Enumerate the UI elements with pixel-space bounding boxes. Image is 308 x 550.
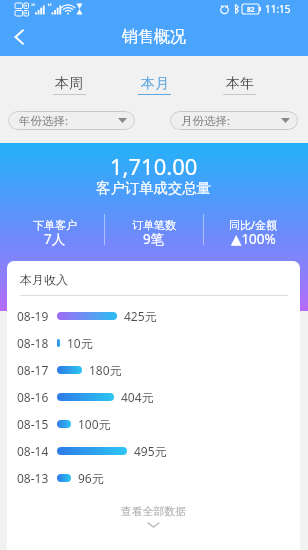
button[interactable]: 本月 xyxy=(112,56,197,102)
staticText: 180元 xyxy=(89,362,122,378)
staticText: 08-17 xyxy=(17,362,49,378)
staticText: 08-15 xyxy=(17,416,49,432)
staticText: 同比/金额 xyxy=(229,217,278,232)
staticText: 08-14 xyxy=(17,443,49,459)
staticText: 404元 xyxy=(121,389,154,405)
staticText: 年份选择: xyxy=(19,113,69,129)
staticText: 销售概况 xyxy=(122,27,186,47)
button[interactable]: 查看全部数据 xyxy=(7,505,300,528)
staticText: 本月 xyxy=(141,75,169,93)
button[interactable]: 本周 xyxy=(26,56,112,102)
staticText: 425元 xyxy=(124,308,157,324)
staticText: 08-18 xyxy=(17,335,49,351)
staticText: 9笔 xyxy=(143,230,165,248)
button[interactable]: 月份选择: xyxy=(170,111,298,130)
staticText: 08-16 xyxy=(17,389,49,405)
button[interactable]: 年份选择: xyxy=(8,111,135,130)
staticText: 11:15 xyxy=(265,2,291,16)
staticText: 495元 xyxy=(134,443,167,459)
staticText: 本月收入 xyxy=(20,272,68,287)
button[interactable]: Back xyxy=(0,18,38,56)
staticText: 08-19 xyxy=(17,308,49,324)
staticText: 10元 xyxy=(67,335,93,351)
button[interactable]: 本年 xyxy=(197,56,282,102)
staticText: 本年 xyxy=(226,75,254,93)
staticText: ▲100% xyxy=(231,230,276,248)
staticText: 下单客户 xyxy=(33,218,77,232)
staticText: 08-13 xyxy=(17,470,49,486)
staticText: 96元 xyxy=(78,470,104,486)
staticText: 月份选择: xyxy=(181,113,231,129)
staticText: 1,710.00 xyxy=(110,151,198,181)
staticText: 本周 xyxy=(55,75,83,93)
staticText: 7人 xyxy=(44,230,66,248)
staticText: 82 xyxy=(247,5,255,14)
staticText: 订单笔数 xyxy=(132,218,176,232)
staticText: 查看全部数据 xyxy=(121,505,186,519)
staticText: 100元 xyxy=(78,416,111,432)
staticText: 客户订单成交总量 xyxy=(96,179,212,197)
